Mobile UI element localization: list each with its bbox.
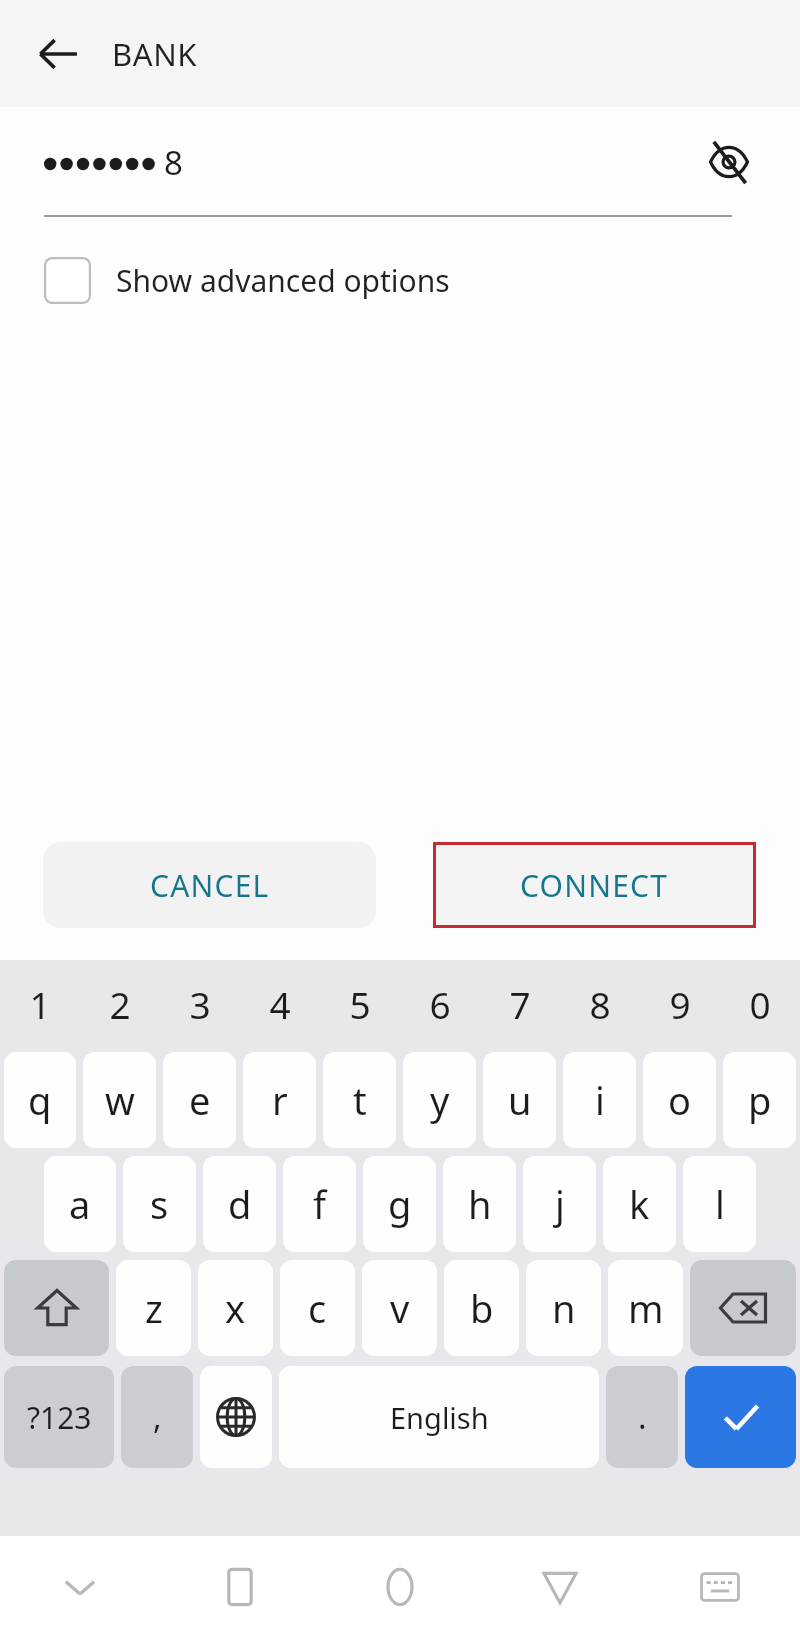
button[interactable]: Back <box>480 1536 640 1637</box>
staticText: ?123 <box>27 1397 92 1438</box>
button[interactable]: f <box>283 1156 356 1252</box>
staticText: 3 <box>189 979 211 1029</box>
staticText: x <box>225 1282 246 1334</box>
staticText: l <box>715 1178 725 1230</box>
button[interactable]: 8 <box>560 960 640 1048</box>
button[interactable]: . <box>606 1366 678 1468</box>
button[interactable]: 1 <box>0 960 80 1048</box>
staticText: c <box>308 1282 327 1334</box>
button[interactable]: Backspace <box>690 1260 796 1356</box>
button[interactable]: b <box>444 1260 519 1356</box>
button[interactable]: s <box>123 1156 196 1252</box>
staticText: h <box>468 1178 492 1230</box>
staticText: CONNECT <box>520 865 669 906</box>
button[interactable]: n <box>526 1260 601 1356</box>
staticText: u <box>508 1074 532 1126</box>
button[interactable]: x <box>198 1260 273 1356</box>
button[interactable]: Show advanced options <box>0 243 800 317</box>
staticText: Show advanced options <box>116 260 450 301</box>
staticText: BANK <box>112 33 198 75</box>
button[interactable]: English <box>279 1366 599 1468</box>
staticText: w <box>105 1074 135 1126</box>
staticText: i <box>595 1074 605 1126</box>
staticText: b <box>470 1282 494 1334</box>
button[interactable]: j <box>523 1156 596 1252</box>
button[interactable]: r <box>243 1052 316 1148</box>
staticText: m <box>628 1282 664 1334</box>
staticText: y <box>430 1074 450 1126</box>
button[interactable]: ?123 <box>4 1366 114 1468</box>
staticText: English <box>390 1398 489 1437</box>
button[interactable]: Hide password <box>698 131 760 193</box>
button[interactable]: h <box>443 1156 516 1252</box>
button[interactable]: k <box>603 1156 676 1252</box>
button[interactable]: w <box>83 1052 156 1148</box>
button[interactable]: e <box>163 1052 236 1148</box>
button[interactable]: CONNECT <box>433 842 756 928</box>
staticText: 4 <box>269 979 291 1029</box>
button[interactable]: y <box>403 1052 476 1148</box>
staticText: z <box>145 1282 163 1334</box>
staticText: 7 <box>509 979 531 1029</box>
button[interactable]: z <box>116 1260 191 1356</box>
button[interactable]: 7 <box>480 960 560 1048</box>
button[interactable]: l <box>683 1156 756 1252</box>
button[interactable]: c <box>280 1260 355 1356</box>
staticText: e <box>189 1074 211 1126</box>
staticText: q <box>28 1074 52 1126</box>
staticText: g <box>388 1178 412 1230</box>
staticText: v <box>390 1282 410 1334</box>
staticText: n <box>552 1282 576 1334</box>
button[interactable]: m <box>608 1260 683 1356</box>
button[interactable]: o <box>643 1052 716 1148</box>
button[interactable]: 9 <box>640 960 720 1048</box>
staticText: 9 <box>669 979 691 1029</box>
button[interactable]: Keyboard <box>640 1536 800 1637</box>
button[interactable]: Shift <box>4 1260 109 1356</box>
staticText: 6 <box>429 979 451 1029</box>
button[interactable]: 5 <box>320 960 400 1048</box>
button[interactable]: Back <box>28 24 88 84</box>
button[interactable]: Enter <box>685 1366 796 1468</box>
button[interactable]: Change language <box>200 1366 272 1468</box>
button[interactable]: q <box>4 1052 76 1148</box>
button[interactable]: i <box>563 1052 636 1148</box>
button[interactable]: v <box>362 1260 437 1356</box>
staticText: 8 <box>589 979 611 1029</box>
button[interactable]: CANCEL <box>43 842 376 928</box>
button[interactable]: Hide keyboard <box>0 1536 160 1637</box>
staticText: 2 <box>109 979 131 1029</box>
button[interactable]: d <box>203 1156 276 1252</box>
staticText: . <box>638 1395 647 1439</box>
staticText: 0 <box>749 979 771 1029</box>
staticText: 5 <box>349 979 371 1029</box>
staticText: s <box>150 1178 169 1230</box>
staticText: p <box>748 1074 772 1126</box>
staticText: , <box>153 1395 162 1439</box>
button[interactable]: g <box>363 1156 436 1252</box>
button[interactable]: 2 <box>80 960 160 1048</box>
staticText: d <box>228 1178 252 1230</box>
button[interactable]: u <box>483 1052 556 1148</box>
button[interactable]: 3 <box>160 960 240 1048</box>
staticText: o <box>668 1074 691 1126</box>
button[interactable]: p <box>723 1052 796 1148</box>
staticText: 8 <box>164 140 183 185</box>
button[interactable]: , <box>121 1366 193 1468</box>
staticText: a <box>69 1178 91 1230</box>
button[interactable]: t <box>323 1052 396 1148</box>
button[interactable]: 6 <box>400 960 480 1048</box>
staticText: t <box>353 1074 367 1126</box>
button[interactable]: Home <box>320 1536 480 1637</box>
button[interactable]: 0 <box>720 960 800 1048</box>
button[interactable]: 4 <box>240 960 320 1048</box>
button[interactable]: Recents <box>160 1536 320 1637</box>
staticText: r <box>272 1074 288 1126</box>
button[interactable]: a <box>44 1156 116 1252</box>
staticText: CANCEL <box>150 865 270 906</box>
staticText: 1 <box>29 979 51 1029</box>
staticText: k <box>629 1178 650 1230</box>
staticText: j <box>555 1178 565 1230</box>
staticText: f <box>313 1178 327 1230</box>
